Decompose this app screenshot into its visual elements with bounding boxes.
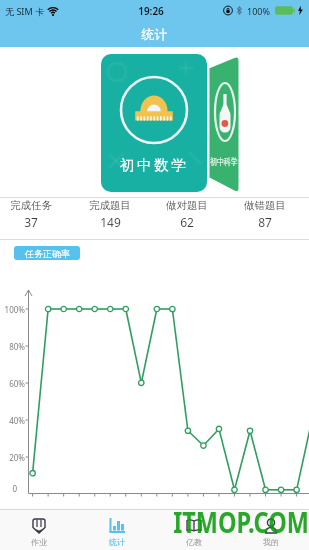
staticText: 60% — [0, 378, 25, 389]
staticText: 62 — [180, 214, 194, 230]
staticText: 100% — [247, 5, 270, 17]
button[interactable]: 亿教 — [155, 510, 232, 550]
button[interactable]: 统计 — [78, 510, 155, 550]
staticText: 初中数学 — [101, 156, 207, 174]
staticText: 作业 — [31, 537, 47, 547]
staticText: 20% — [0, 452, 25, 463]
staticText: 统计 — [109, 537, 125, 547]
button[interactable]: 作业 — [0, 510, 78, 550]
staticText: 40% — [0, 415, 25, 426]
staticText: 亿教 — [186, 537, 202, 547]
staticText: 做错题目 — [244, 199, 286, 212]
staticText: 0 — [0, 483, 17, 494]
staticText: 我的 — [263, 537, 279, 547]
button[interactable]: 完成题目 — [71, 199, 149, 232]
staticText: 100% — [0, 304, 25, 315]
button[interactable]: 任务正确率 — [14, 246, 80, 260]
button[interactable]: 初中数学 — [101, 54, 207, 192]
staticText: 做对题目 — [166, 199, 208, 212]
staticText: 19:26 — [131, 4, 171, 18]
staticText: 87 — [258, 214, 272, 230]
button[interactable]: 我的 — [232, 510, 309, 550]
button[interactable]: 完成任务 — [0, 199, 70, 232]
staticText: 149 — [100, 214, 121, 230]
button[interactable]: 做错题目 — [226, 199, 304, 232]
button[interactable] — [209, 58, 239, 192]
staticText: 初中科学 — [210, 156, 238, 168]
staticText: 完成题目 — [89, 199, 131, 212]
staticText: 无 SIM 卡 — [5, 5, 44, 17]
button[interactable]: 做对题目 — [148, 199, 226, 232]
staticText: 统计 — [0, 26, 309, 42]
staticText: 完成任务 — [10, 199, 52, 212]
staticText: 80% — [0, 341, 25, 352]
staticText: 37 — [24, 214, 38, 230]
staticText: ITMOP.COM — [173, 502, 309, 541]
staticText: 任务正确率 — [25, 248, 70, 259]
